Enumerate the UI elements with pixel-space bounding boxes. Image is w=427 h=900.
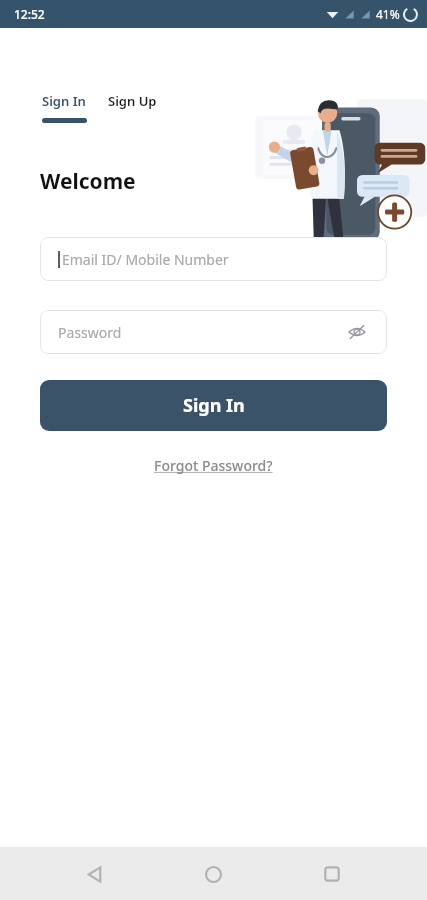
staticText: Forgot Password? <box>154 456 273 475</box>
button[interactable]: Email ID/ Mobile Number <box>40 237 387 281</box>
button[interactable]: Back <box>70 850 118 898</box>
staticText: Sign In <box>183 393 245 418</box>
button[interactable]: Password <box>40 310 387 354</box>
staticText: 41% <box>376 6 400 22</box>
button[interactable]: Home <box>189 850 237 898</box>
staticText: Password <box>58 323 345 342</box>
staticText: Email ID/ Mobile Number <box>62 250 369 269</box>
staticText: Welcome <box>40 167 136 196</box>
button[interactable]: Forgot Password? <box>146 452 281 479</box>
button[interactable]: Show password <box>345 320 369 344</box>
button[interactable]: Recent apps <box>308 850 356 898</box>
staticText: 12:52 <box>14 6 45 22</box>
button[interactable]: Sign In <box>40 380 387 431</box>
button[interactable]: Sign Up <box>106 90 159 112</box>
staticText: Sign In <box>42 92 86 110</box>
button[interactable]: Sign In <box>40 90 88 112</box>
staticText: Sign Up <box>108 92 157 110</box>
